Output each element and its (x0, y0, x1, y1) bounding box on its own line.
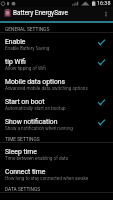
staticText: GENERAL SETTINGS (5, 27, 50, 32)
staticText: Enable (5, 38, 26, 46)
staticText: TIME SETTINGS (5, 137, 40, 142)
staticText: Show a notification when running (5, 126, 73, 131)
staticText: Mobile data options (5, 78, 66, 86)
staticText: Show notification (5, 118, 58, 126)
staticText: Advanced mobile data switching options (5, 86, 88, 91)
button[interactable]: Enable checkbox (96, 33, 107, 53)
button[interactable]: Enable (0, 33, 113, 53)
button[interactable]: tip Wifi (0, 53, 113, 73)
button[interactable]: Show notification checkbox (96, 113, 107, 133)
staticText: Allow tipping of Wifi (5, 66, 46, 71)
staticText: Connect time (5, 168, 46, 176)
staticText: Enable Battery Saving (5, 46, 50, 51)
button[interactable]: Show notification (0, 113, 113, 133)
staticText: Battery EnergySave (13, 9, 68, 17)
staticText: How long to stay connected when awake (5, 176, 89, 181)
staticText: Automatically start on bootup (5, 106, 66, 111)
button[interactable]: More options (100, 8, 111, 19)
button[interactable]: tip Wifi checkbox (96, 53, 107, 73)
staticText: Start on boot (5, 98, 45, 106)
button[interactable]: Start on boot checkbox (96, 93, 107, 113)
button[interactable]: Start on boot (0, 93, 113, 113)
button[interactable]: Connect time (0, 163, 113, 183)
staticText: 16:38 (97, 0, 111, 6)
button[interactable]: Sleep time (0, 143, 113, 163)
staticText: Time between enabling of data (5, 156, 68, 161)
staticText: DATA SETTINGS (5, 187, 41, 192)
staticText: Sleep time (5, 148, 37, 156)
staticText: tip Wifi (5, 58, 26, 66)
button[interactable]: Mobile data options (0, 73, 113, 93)
